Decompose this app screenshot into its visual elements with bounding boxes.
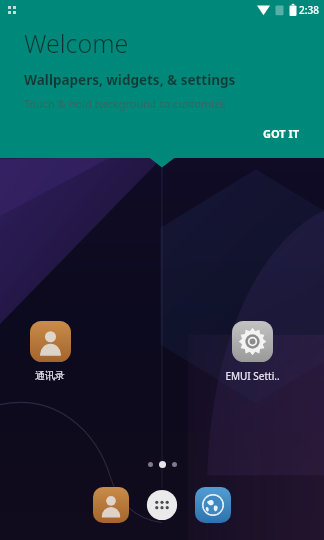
button[interactable]: EMUI Settings [210,321,294,383]
staticText: Welcome [24,26,129,60]
button[interactable]: Contacts [8,321,92,382]
staticText: 通讯录 [35,369,65,382]
button[interactable]: Contacts [89,483,133,527]
staticText: Wallpapers, widgets, & settings [24,71,236,89]
staticText: GOT IT [263,126,300,141]
staticText: Touch & hold background to customize [24,96,226,111]
staticText: 2:38 [299,3,319,17]
button[interactable]: All apps [140,483,184,527]
staticText: EMUI Setti.. [225,369,280,383]
button[interactable]: Browser [191,483,235,527]
button[interactable]: GOT IT [253,120,310,147]
